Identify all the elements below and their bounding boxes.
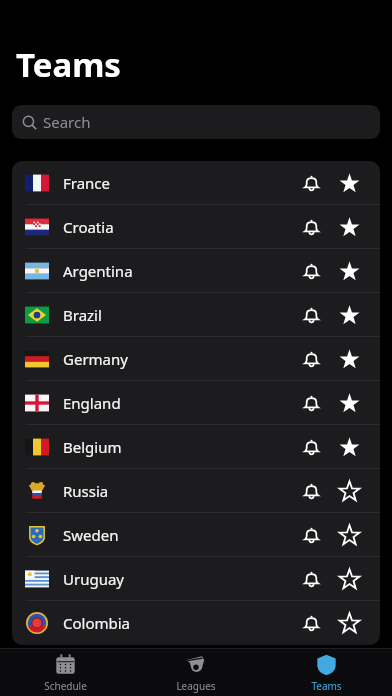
staticText: Schedule — [44, 679, 87, 693]
button[interactable]: Croatia — [12, 205, 380, 248]
button[interactable]: Belgium — [12, 425, 380, 468]
staticText: Germany — [63, 349, 128, 369]
staticText: Search — [43, 112, 91, 132]
staticText: Russia — [63, 481, 109, 501]
button[interactable]: Notifications for Germany — [294, 342, 328, 376]
button[interactable]: Notifications for Belgium — [294, 430, 328, 464]
staticText: England — [63, 393, 121, 413]
button[interactable]: Notifications for Sweden — [294, 518, 328, 552]
button[interactable]: Notifications for France — [294, 166, 328, 200]
staticText: Teams — [311, 679, 342, 693]
button[interactable]: Notifications for Croatia — [294, 210, 328, 244]
button[interactable]: Russia — [12, 469, 380, 512]
button[interactable]: Favorite Belgium — [332, 430, 366, 464]
button[interactable]: Brazil — [12, 293, 380, 336]
button[interactable]: Sweden — [12, 513, 380, 556]
button[interactable]: Argentina — [12, 249, 380, 292]
staticText: Argentina — [63, 261, 133, 281]
button[interactable]: France — [12, 161, 380, 204]
button[interactable]: England — [12, 381, 380, 424]
staticText: Teams — [16, 42, 121, 87]
button[interactable]: Germany — [12, 337, 380, 380]
button[interactable]: Uruguay — [12, 557, 380, 600]
button[interactable]: Favorite France — [332, 166, 366, 200]
button[interactable]: Favorite Croatia — [332, 210, 366, 244]
staticText: Croatia — [63, 217, 114, 237]
button[interactable]: Notifications for Argentina — [294, 254, 328, 288]
staticText: Sweden — [63, 525, 119, 545]
staticText: Colombia — [63, 613, 131, 633]
button[interactable]: Favorite Russia — [332, 474, 366, 508]
button[interactable]: Favorite Germany — [332, 342, 366, 376]
button[interactable]: Notifications for Russia — [294, 474, 328, 508]
staticText: Leagues — [176, 679, 216, 693]
button[interactable]: Teams — [261, 649, 392, 696]
button[interactable]: Search — [12, 105, 380, 139]
button[interactable]: Notifications for England — [294, 386, 328, 420]
button[interactable]: Favorite England — [332, 386, 366, 420]
button[interactable]: Schedule — [0, 649, 130, 696]
staticText: France — [63, 173, 111, 193]
button[interactable]: Colombia — [12, 601, 380, 644]
button[interactable]: Favorite Uruguay — [332, 562, 366, 596]
button[interactable]: Favorite Colombia — [332, 606, 366, 640]
button[interactable]: Leagues — [130, 649, 261, 696]
button[interactable]: Favorite Sweden — [332, 518, 366, 552]
button[interactable]: Favorite Argentina — [332, 254, 366, 288]
staticText: Belgium — [63, 437, 122, 457]
staticText: Brazil — [63, 305, 102, 325]
button[interactable]: Favorite Brazil — [332, 298, 366, 332]
button[interactable]: Notifications for Uruguay — [294, 562, 328, 596]
staticText: Uruguay — [63, 569, 124, 589]
button[interactable]: Notifications for Colombia — [294, 606, 328, 640]
button[interactable]: Notifications for Brazil — [294, 298, 328, 332]
